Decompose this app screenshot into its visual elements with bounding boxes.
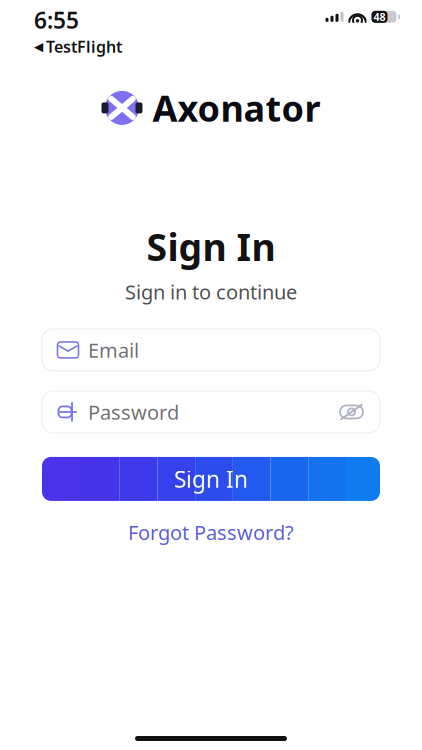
staticText: Forgot Password?	[128, 519, 294, 545]
staticText: 48	[373, 10, 385, 24]
button[interactable]: Forgot Password?	[114, 513, 308, 551]
staticText: ◀	[34, 40, 43, 53]
staticText: Sign In	[174, 464, 248, 494]
button[interactable]: ◀	[34, 36, 122, 57]
button[interactable]: Email	[42, 329, 380, 371]
staticText: Axonator	[152, 84, 320, 132]
staticText: 6:55	[34, 5, 79, 35]
staticText: TestFlight	[46, 36, 122, 57]
staticText: Password	[88, 399, 179, 425]
button[interactable]: Password	[42, 391, 380, 433]
staticText: Email	[88, 337, 139, 363]
button[interactable]: Sign In	[42, 457, 380, 501]
staticText: Sign In	[146, 222, 275, 271]
staticText: Sign in to continue	[125, 278, 297, 305]
